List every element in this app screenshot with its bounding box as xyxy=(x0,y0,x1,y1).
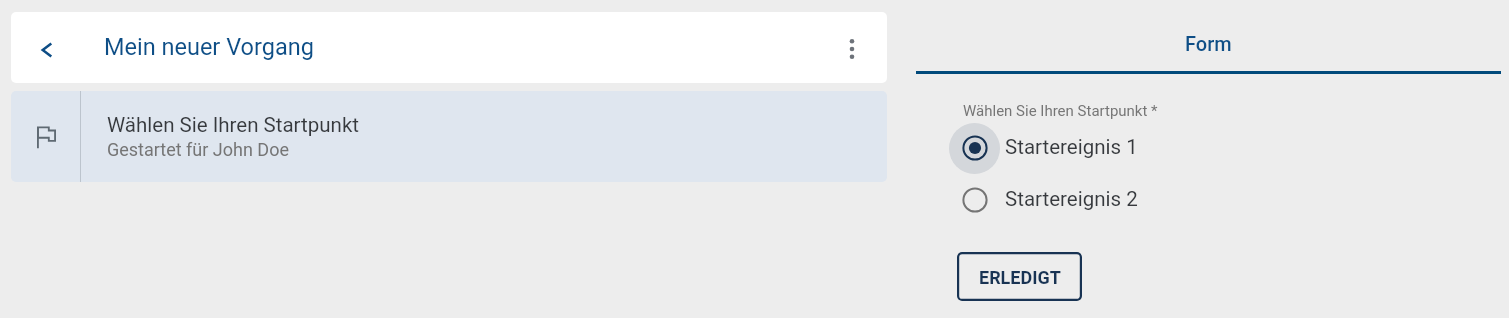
button[interactable]: Form xyxy=(916,22,1501,71)
staticText: Wählen Sie Ihren Startpunkt xyxy=(107,113,359,137)
button[interactable]: Wählen Sie Ihren Startpunkt xyxy=(11,91,887,182)
staticText: ERLEDIGT xyxy=(979,267,1061,288)
staticText: Mein neuer Vorgang xyxy=(104,33,314,61)
button[interactable]: More options xyxy=(830,26,874,70)
staticText: Wählen Sie Ihren Startpunkt * xyxy=(963,102,1158,120)
staticText: Startereignis 2 xyxy=(1005,187,1138,211)
button[interactable]: Startereignis 1 xyxy=(949,121,1138,173)
staticText: Gestartet für John Doe xyxy=(107,139,289,160)
button[interactable]: Startereignis 2 xyxy=(949,173,1138,225)
staticText: Form xyxy=(1185,32,1232,55)
button[interactable]: Back xyxy=(22,24,70,72)
button[interactable]: ERLEDIGT xyxy=(957,252,1082,301)
staticText: Startereignis 1 xyxy=(1005,135,1138,159)
